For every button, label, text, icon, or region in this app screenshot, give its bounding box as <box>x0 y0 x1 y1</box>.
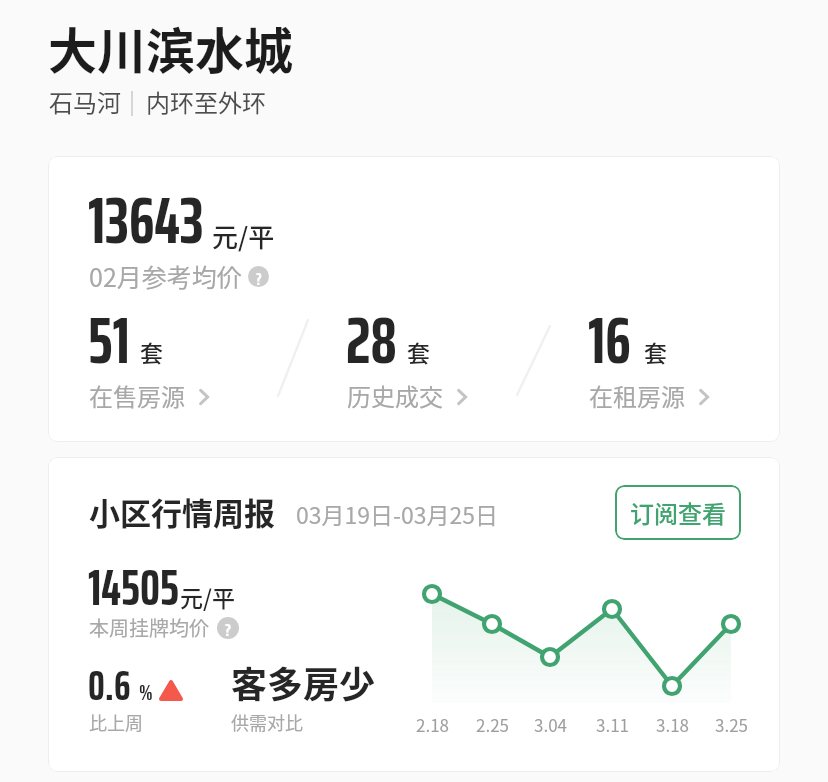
staticText: 元/平 <box>180 580 235 613</box>
staticText: 51 <box>88 289 130 391</box>
button[interactable]: 在售房源 <box>82 308 272 416</box>
staticText: 套 <box>140 335 163 368</box>
staticText: 3.11 <box>596 712 630 737</box>
staticText: 02月参考均价 <box>89 258 242 294</box>
button[interactable]: 价格说明 <box>217 617 239 639</box>
staticText: 03月19日-03月25日 <box>296 497 499 530</box>
staticText: 2.18 <box>416 712 450 737</box>
staticText: 内环至外环 <box>146 84 266 119</box>
staticText: 在售房源 <box>89 378 185 413</box>
staticText: 3.04 <box>534 712 568 737</box>
staticText: 套 <box>407 335 430 368</box>
staticText: % <box>139 676 153 709</box>
button[interactable]: 订阅查看 <box>615 485 741 540</box>
staticText: 28 <box>346 289 397 391</box>
staticText: 订阅查看 <box>630 495 726 530</box>
staticText: 供需对比 <box>231 709 303 735</box>
button[interactable] <box>78 184 338 296</box>
staticText: 0.6 <box>88 652 131 718</box>
staticText: 客多房少 <box>231 656 376 708</box>
staticText: ? <box>225 617 232 638</box>
staticText: 历史成交 <box>347 378 443 413</box>
staticText: 套 <box>644 335 667 368</box>
staticText: 比上周 <box>89 709 143 735</box>
staticText: 小区行情周报 <box>89 489 275 534</box>
staticText: 3.18 <box>656 712 690 737</box>
staticText: 大川滨水城 <box>48 12 294 83</box>
staticText: 14505 <box>88 548 179 627</box>
staticText: 本周挂牌均价 <box>89 613 209 642</box>
staticText: 3.25 <box>715 712 749 737</box>
staticText: 2.25 <box>476 712 510 737</box>
button[interactable]: 历史成交 <box>340 308 530 416</box>
staticText: 16 <box>588 289 631 391</box>
button[interactable]: 在租房源 <box>582 308 772 416</box>
button[interactable]: 价格说明 <box>248 266 269 287</box>
staticText: 13643 <box>88 169 204 271</box>
staticText: 石马河 <box>49 84 121 119</box>
staticText: 元/平 <box>212 217 275 255</box>
staticText: 在租房源 <box>589 378 685 413</box>
staticText: ? <box>256 266 262 286</box>
